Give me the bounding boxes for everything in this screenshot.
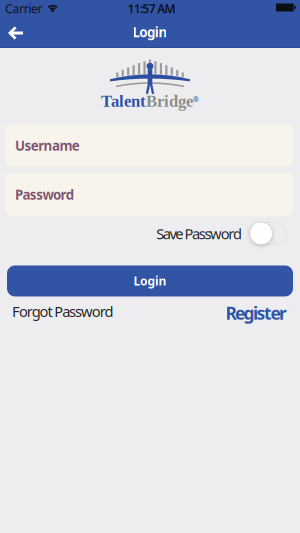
button[interactable]: Password [6,173,293,215]
button[interactable]: Username [6,124,293,166]
staticText: Login [133,23,167,41]
staticText: Password [15,186,74,203]
button[interactable]: Back [0,18,33,48]
staticText: ® [193,95,199,104]
button[interactable]: Login [7,265,293,296]
staticText: Save Password [156,224,242,243]
button[interactable]: Save Password [156,222,287,244]
button[interactable]: Forgot Password [12,301,114,321]
staticText: Talent [101,92,146,110]
staticText: Bridge [146,92,193,110]
button[interactable]: Register [225,301,287,324]
staticText: Forgot Password [12,301,114,321]
staticText: Username [15,137,80,154]
staticText: Login [133,273,166,289]
staticText: Register [225,301,287,324]
staticText: 11:57 AM [127,0,176,16]
staticText: Carrier [5,0,43,16]
